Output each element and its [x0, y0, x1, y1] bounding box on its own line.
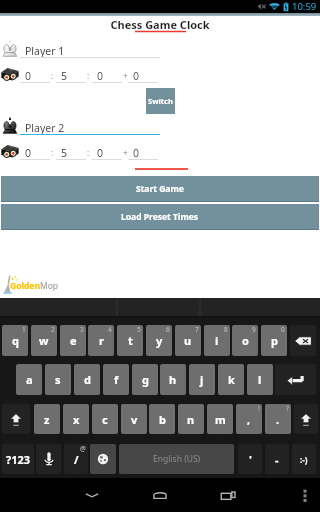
staticText: g — [142, 372, 149, 387]
button[interactable] — [275, 364, 316, 395]
button[interactable]: ?123 — [2, 444, 34, 474]
staticText: Golden — [10, 280, 40, 292]
button[interactable]: ' — [238, 444, 262, 474]
button[interactable]: w — [31, 325, 57, 356]
staticText: a — [26, 372, 33, 387]
staticText: e — [70, 333, 77, 348]
staticText: 0 — [97, 69, 104, 83]
staticText: : — [87, 147, 90, 158]
staticText: 0 — [25, 146, 32, 160]
button[interactable]: h — [160, 364, 186, 395]
button[interactable]: f — [103, 364, 129, 395]
button[interactable]: - — [265, 444, 289, 474]
staticText: 6 — [166, 325, 170, 334]
button[interactable]: p — [261, 325, 287, 356]
button[interactable] — [36, 444, 61, 474]
staticText: k — [228, 372, 235, 387]
staticText: 0 — [281, 325, 285, 334]
staticText: Player 1 — [25, 44, 65, 58]
staticText: 0 — [133, 69, 140, 83]
button[interactable]: :-) — [292, 444, 316, 474]
button[interactable]: , — [236, 404, 262, 434]
staticText: j — [200, 372, 204, 387]
button[interactable]: r — [88, 325, 114, 356]
staticText: x — [73, 412, 80, 427]
staticText: 7 — [195, 325, 199, 334]
staticText: d — [84, 372, 91, 387]
staticText: 0 — [25, 69, 32, 83]
staticText: u — [184, 333, 192, 348]
staticText: s — [55, 372, 61, 387]
button[interactable]: n — [178, 404, 204, 434]
button[interactable]: s — [45, 364, 71, 395]
button[interactable] — [2, 404, 30, 434]
staticText: n — [187, 412, 195, 427]
button[interactable]: k — [218, 364, 244, 395]
button[interactable] — [294, 404, 318, 434]
staticText: f — [114, 372, 119, 387]
button[interactable]: a — [16, 364, 42, 395]
button[interactable]: Recent apps — [208, 478, 248, 512]
button[interactable]: . — [265, 404, 291, 434]
staticText: 1 — [22, 325, 26, 334]
button[interactable]: t — [117, 325, 143, 356]
button[interactable]: Back — [72, 478, 112, 512]
staticText: Switch — [148, 96, 173, 106]
staticText: o — [242, 333, 249, 348]
button[interactable] — [290, 325, 316, 356]
staticText: / — [74, 452, 79, 467]
button[interactable] — [90, 444, 116, 474]
staticText: : — [51, 147, 54, 158]
staticText: 8 — [224, 325, 228, 334]
button[interactable]: e — [60, 325, 86, 356]
button[interactable]: c — [92, 404, 118, 434]
staticText: - — [275, 452, 279, 467]
button[interactable]: j — [189, 364, 215, 395]
button[interactable]: m — [207, 404, 233, 434]
button[interactable]: English (US) — [119, 444, 234, 474]
staticText: 5 — [137, 325, 141, 334]
staticText: t — [128, 333, 133, 348]
button[interactable]: q — [2, 325, 28, 356]
staticText: c — [102, 412, 108, 427]
staticText: b — [159, 412, 166, 427]
button[interactable]: g — [132, 364, 158, 395]
button[interactable]: i — [204, 325, 230, 356]
button[interactable]: b — [149, 404, 175, 434]
button[interactable]: z — [34, 404, 60, 434]
staticText: 5 — [61, 146, 68, 160]
staticText: 5 — [61, 69, 68, 83]
button[interactable]: Start Game — [1, 176, 319, 202]
button[interactable]: y — [146, 325, 172, 356]
staticText: + — [123, 147, 128, 158]
staticText: ' — [249, 452, 252, 467]
staticText: 0 — [133, 146, 140, 160]
staticText: Load Preset Times — [121, 211, 199, 223]
button[interactable]: x — [63, 404, 89, 434]
staticText: p — [271, 333, 278, 348]
button[interactable]: Home — [140, 478, 180, 512]
button[interactable]: More options — [290, 478, 320, 512]
staticText: Player 2 — [25, 121, 65, 135]
button[interactable]: l — [247, 364, 273, 395]
staticText: l — [258, 372, 262, 387]
button[interactable]: Load Preset Times — [1, 204, 319, 230]
staticText: r — [99, 333, 104, 348]
staticText: 9 — [252, 325, 256, 334]
staticText: : — [51, 70, 54, 81]
button[interactable]: Switch — [146, 88, 175, 114]
staticText: 4 — [108, 325, 112, 334]
staticText: Start Game — [136, 183, 184, 195]
button[interactable]: o — [232, 325, 258, 356]
staticText: , — [247, 412, 251, 427]
staticText: i — [215, 333, 219, 348]
staticText: z — [44, 412, 50, 427]
button[interactable]: / — [64, 444, 88, 474]
button[interactable]: u — [175, 325, 201, 356]
staticText: q — [12, 333, 19, 348]
staticText: 2 — [51, 325, 55, 334]
staticText: ?123 — [6, 452, 31, 467]
button[interactable]: d — [74, 364, 100, 395]
button[interactable]: v — [121, 404, 147, 434]
staticText: . — [276, 412, 280, 427]
